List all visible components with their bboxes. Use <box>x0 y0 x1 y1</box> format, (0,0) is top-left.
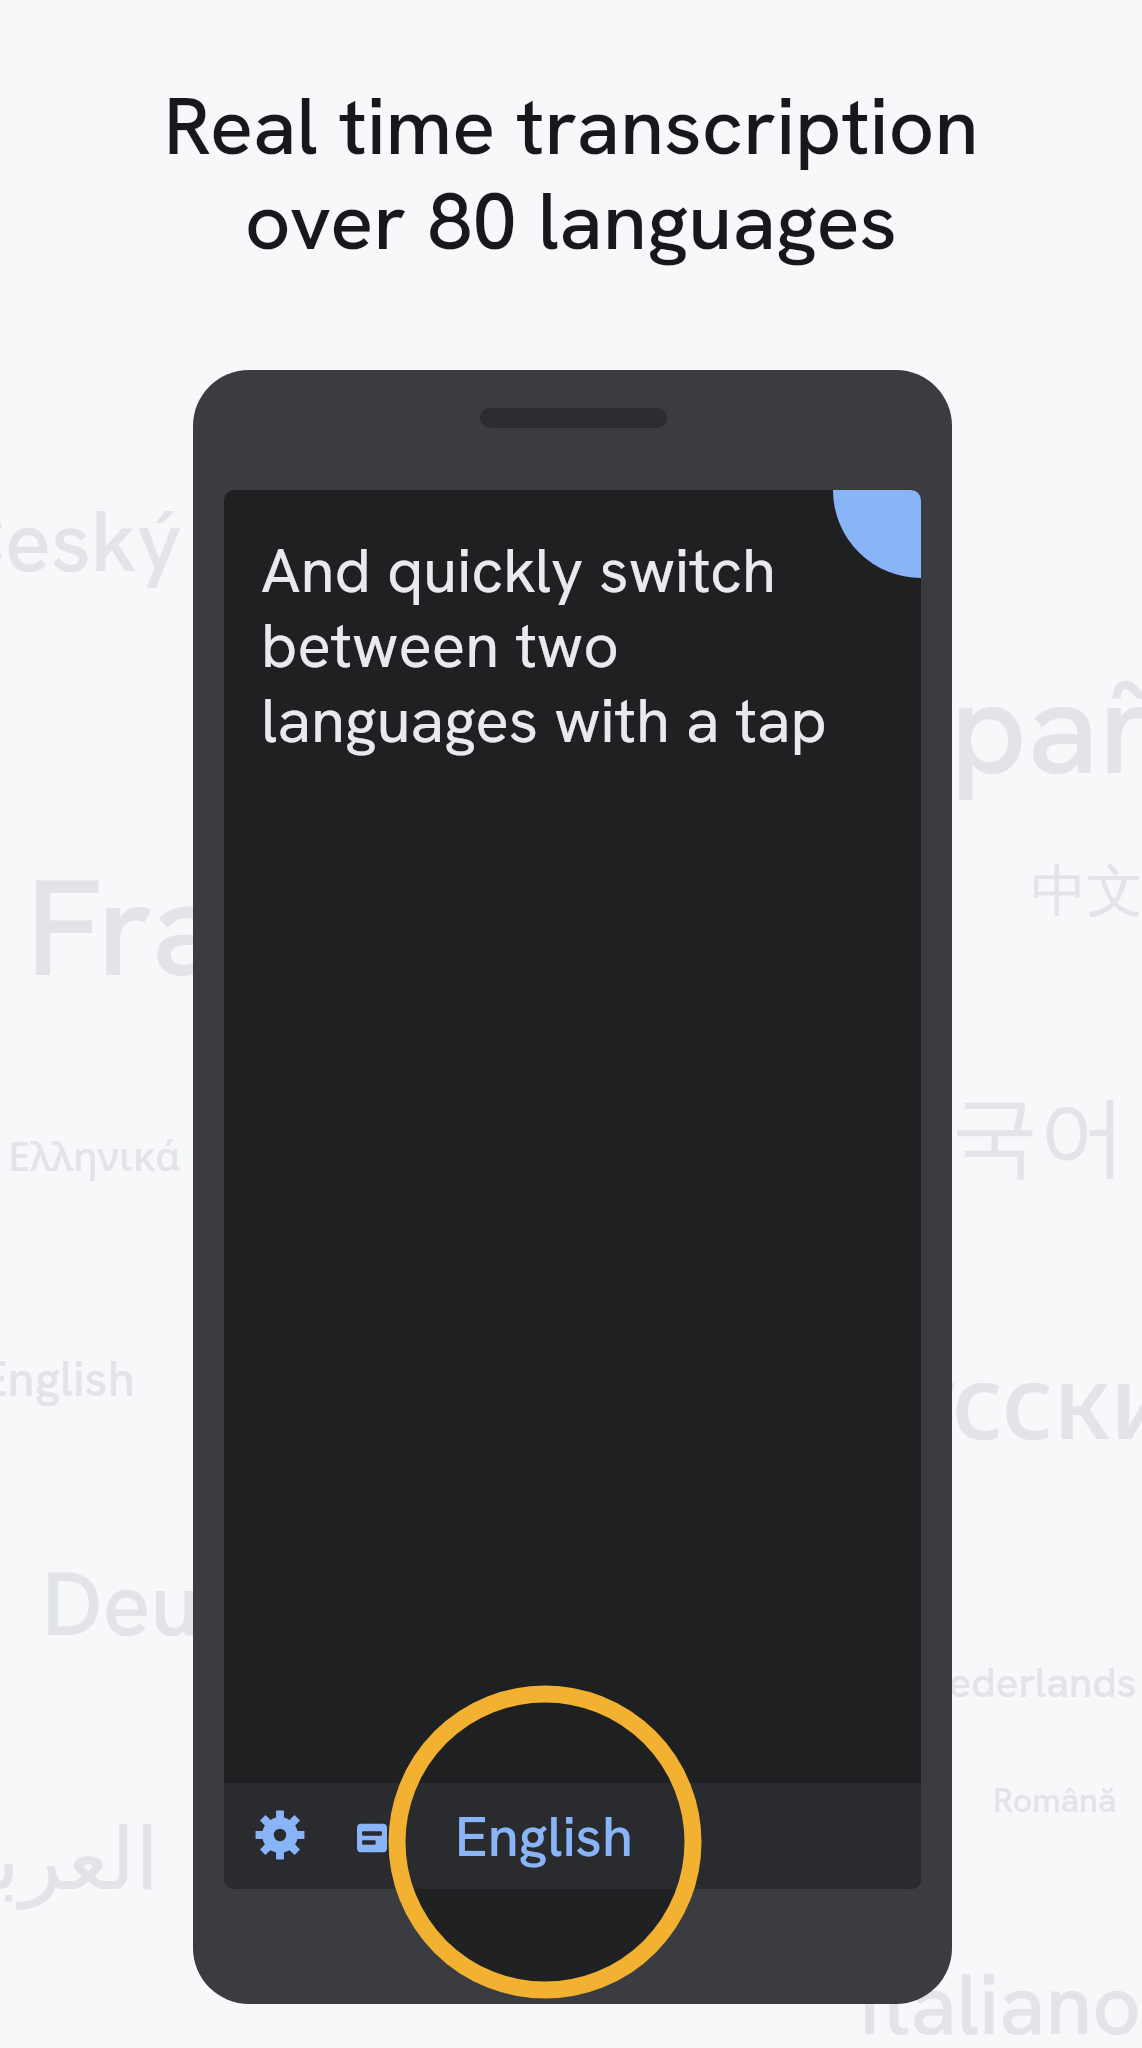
staticText: Ελληνικά <box>8 1128 181 1182</box>
staticText: English <box>455 1800 633 1873</box>
button[interactable]: Transcription mode <box>344 1810 400 1866</box>
staticText: Nederlands <box>920 1655 1137 1710</box>
staticText: 中文 <box>1031 856 1142 927</box>
staticText: Český <box>0 486 182 597</box>
staticText: Real time transcription over 80 language… <box>0 74 1142 273</box>
staticText: العربية <box>0 1809 160 1909</box>
staticText: Română <box>993 1778 1117 1822</box>
staticText: English <box>0 1347 135 1411</box>
button[interactable]: English <box>424 1783 664 1889</box>
staticText: Deutsch <box>42 1546 369 1662</box>
staticText: Español <box>811 641 1142 813</box>
staticText: Français <box>26 840 538 1016</box>
staticText: Русский <box>839 1330 1142 1469</box>
staticText: 한국어 <box>863 1081 1127 1192</box>
staticText: And quickly switch between two languages… <box>261 530 827 760</box>
button[interactable]: Settings <box>252 1807 308 1863</box>
staticText: Italiano <box>859 1949 1142 2048</box>
